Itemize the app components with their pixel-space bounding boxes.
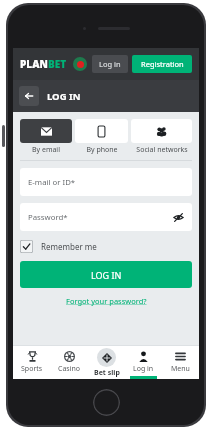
staticText: By phone: [86, 145, 118, 155]
staticText: Bet slip: [94, 368, 120, 378]
staticText: BET: [48, 57, 67, 71]
button[interactable]: Language: [73, 57, 87, 71]
staticText: By email: [32, 145, 60, 155]
staticText: Remember me: [41, 241, 97, 252]
button[interactable]: Remember me: [20, 240, 97, 253]
staticText: Menu: [171, 364, 190, 374]
button[interactable]: Social networks: [131, 119, 192, 155]
staticText: E-mail or ID*: [28, 177, 76, 188]
staticText: Casino: [58, 364, 81, 374]
staticText: Sports: [21, 364, 43, 374]
button[interactable]: Forgot your password?: [66, 296, 147, 306]
staticText: Log in: [133, 364, 154, 374]
button[interactable]: Log in: [125, 346, 162, 379]
button[interactable]: Registration: [132, 55, 192, 73]
staticText: Log in: [99, 59, 121, 69]
button[interactable]: Sports: [13, 346, 51, 379]
button[interactable]: LOG IN: [20, 261, 192, 288]
staticText: LOG IN: [91, 269, 122, 281]
staticText: Password*: [28, 212, 68, 223]
button[interactable]: Bet slip: [88, 346, 125, 379]
staticText: LOG IN: [47, 90, 81, 103]
button[interactable]: Menu: [162, 346, 199, 379]
staticText: Registration: [141, 59, 184, 69]
button[interactable]: Password*: [20, 203, 192, 231]
button[interactable]: Back: [19, 86, 39, 106]
staticText: PLAN: [20, 57, 48, 71]
button[interactable]: Log in: [92, 55, 128, 73]
staticText: Social networks: [136, 145, 188, 155]
button[interactable]: Casino: [51, 346, 88, 379]
button[interactable]: Show password: [172, 211, 184, 223]
button[interactable]: By email: [20, 119, 72, 155]
button[interactable]: By phone: [75, 119, 128, 155]
button[interactable]: E-mail or ID*: [20, 168, 192, 196]
